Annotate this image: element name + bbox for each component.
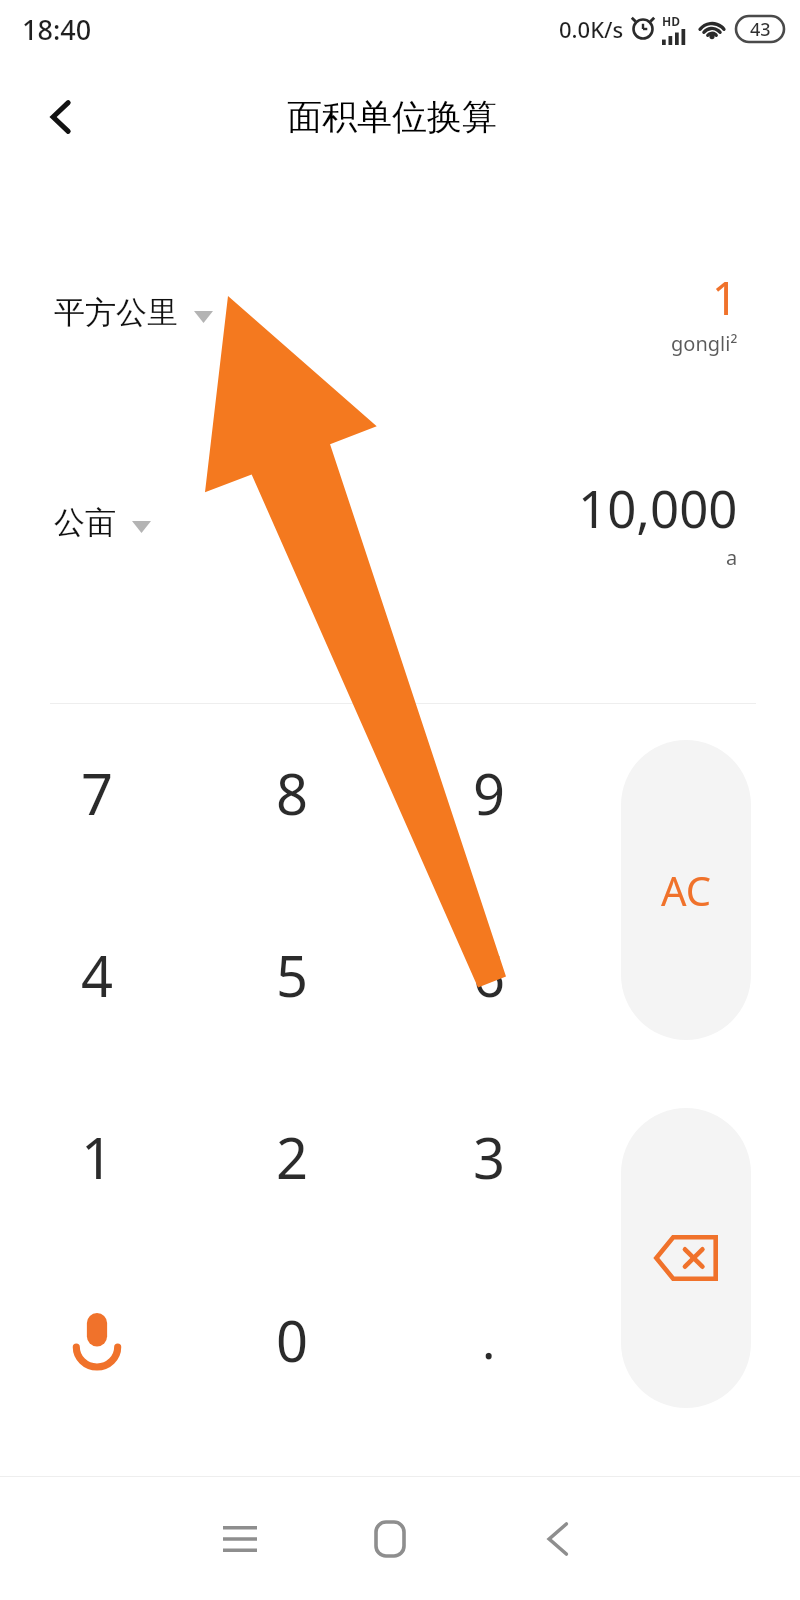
button[interactable]: 7 (4, 703, 190, 883)
staticText: . (482, 1306, 496, 1374)
staticText: 平方公里 (54, 293, 178, 332)
staticText: 18:40 (22, 11, 92, 48)
button[interactable]: Recents (190, 1477, 290, 1600)
button[interactable]: 9 (396, 703, 582, 883)
button[interactable]: Home (340, 1477, 440, 1600)
button[interactable]: 平方公里 (0, 252, 800, 372)
button[interactable]: 8 (199, 703, 385, 883)
button[interactable]: 0 (199, 1250, 385, 1430)
button[interactable]: AC (621, 740, 751, 1040)
staticText: 0.0K/s (559, 14, 624, 44)
button[interactable]: . (396, 1250, 582, 1430)
staticText: 4 (81, 937, 114, 1013)
button[interactable]: Backspace (621, 1108, 751, 1408)
button[interactable]: 1 (4, 1067, 190, 1247)
staticText: 1 (712, 267, 738, 328)
staticText: 面积单位换算 (287, 95, 497, 139)
staticText: 43 (750, 17, 771, 42)
staticText: 7 (81, 755, 114, 831)
button[interactable]: 5 (199, 885, 385, 1065)
button[interactable]: 公亩 (0, 462, 800, 582)
button[interactable]: 4 (4, 885, 190, 1065)
staticText: 1 (81, 1119, 114, 1195)
staticText: 2 (276, 1119, 309, 1195)
button[interactable]: 3 (396, 1067, 582, 1247)
staticText: 5 (276, 937, 309, 1013)
staticText: 10,000 (578, 473, 738, 542)
staticText: 6 (473, 937, 506, 1013)
button[interactable]: Back (28, 84, 94, 150)
staticText: 0 (276, 1302, 309, 1378)
button[interactable]: 2 (199, 1067, 385, 1247)
staticText: gongli² (671, 330, 738, 357)
staticText: 公亩 (54, 503, 116, 542)
button[interactable]: Back (508, 1477, 608, 1600)
staticText: AC (661, 863, 712, 917)
staticText: 8 (276, 755, 309, 831)
staticText: HD (662, 13, 680, 29)
button[interactable]: Voice input (4, 1250, 190, 1430)
button[interactable]: 6 (396, 885, 582, 1065)
staticText: 9 (473, 755, 506, 831)
staticText: a (726, 544, 738, 571)
staticText: 3 (473, 1119, 506, 1195)
